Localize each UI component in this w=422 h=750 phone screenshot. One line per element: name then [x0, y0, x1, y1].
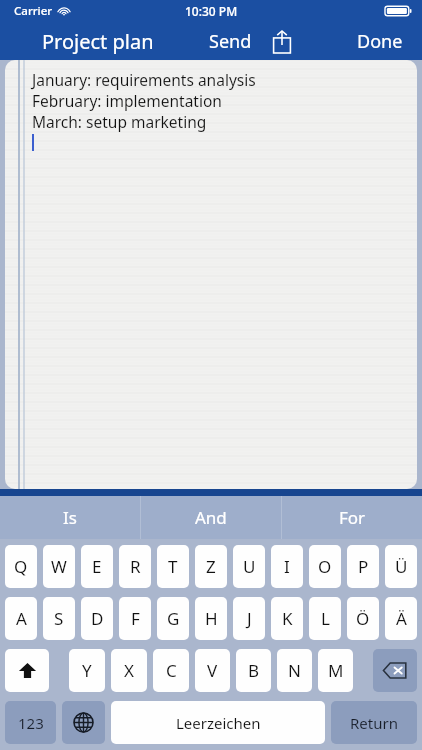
button[interactable]: I [271, 545, 303, 588]
staticText: E [92, 555, 102, 578]
button[interactable]: C [153, 649, 189, 692]
button[interactable]: N [277, 649, 312, 692]
staticText: R [130, 555, 141, 578]
staticText: Is [63, 506, 77, 529]
button[interactable]: B [236, 649, 271, 692]
button[interactable]: Leerzeichen [111, 701, 325, 744]
staticText: T [168, 555, 178, 578]
button[interactable]: Z [195, 545, 227, 588]
staticText: G [167, 607, 180, 630]
button[interactable]: W [43, 545, 75, 588]
staticText: February: implementation [32, 90, 222, 111]
staticText: I [284, 555, 290, 578]
button[interactable]: Q [5, 545, 37, 588]
button[interactable]: M [318, 649, 353, 692]
button[interactable]: P [347, 545, 379, 588]
staticText: M [328, 659, 344, 682]
staticText: January: requirements analysis [32, 69, 256, 90]
button[interactable]: Project plan [0, 24, 166, 59]
staticText: 123 [18, 713, 44, 733]
staticText: Done [357, 29, 403, 54]
staticText: Ö [356, 607, 370, 630]
staticText: P [358, 555, 369, 578]
staticText: O [318, 555, 332, 578]
button[interactable]: S [43, 597, 75, 640]
button[interactable]: K [271, 597, 303, 640]
staticText: Leerzeichen [176, 713, 261, 733]
staticText: N [288, 659, 301, 682]
button[interactable]: R [119, 545, 151, 588]
button[interactable]: Ö [347, 597, 379, 640]
staticText: C [166, 659, 177, 682]
button[interactable]: Return [331, 701, 417, 744]
button[interactable]: Y [69, 649, 105, 692]
staticText: W [51, 555, 67, 578]
button[interactable]: X [111, 649, 147, 692]
staticText: U [243, 555, 256, 578]
staticText: Return [350, 713, 398, 733]
button[interactable]: Change keyboard [62, 701, 105, 744]
staticText: Send [209, 29, 252, 54]
button[interactable]: Ä [385, 597, 417, 640]
staticText: Ü [395, 555, 408, 578]
staticText: F [131, 607, 140, 630]
button[interactable]: January: requirements analysis [5, 60, 417, 489]
staticText: A [16, 607, 27, 630]
staticText: B [248, 659, 260, 682]
button[interactable]: Shift [5, 649, 49, 692]
button[interactable]: E [81, 545, 113, 588]
button[interactable]: G [157, 597, 189, 640]
button[interactable]: U [233, 545, 265, 588]
button[interactable]: For [282, 496, 422, 539]
button[interactable]: Is [0, 496, 140, 539]
staticText: Ä [396, 607, 407, 630]
button[interactable]: O [309, 545, 341, 588]
button[interactable]: Send [203, 25, 258, 58]
staticText: 10:30 PM [185, 3, 238, 19]
button[interactable]: T [157, 545, 189, 588]
staticText: Project plan [42, 28, 154, 55]
button[interactable]: Ü [385, 545, 417, 588]
staticText: D [91, 607, 104, 630]
staticText: Carrier [14, 3, 53, 19]
button[interactable]: L [309, 597, 341, 640]
staticText: Y [82, 659, 92, 682]
button[interactable]: And [141, 496, 281, 539]
staticText: H [205, 607, 218, 630]
button[interactable]: A [5, 597, 37, 640]
staticText: S [54, 607, 64, 630]
button[interactable]: H [195, 597, 227, 640]
staticText: X [124, 659, 134, 682]
staticText: Z [206, 555, 216, 578]
staticText: Q [14, 555, 28, 578]
button[interactable]: F [119, 597, 151, 640]
button[interactable]: Done [345, 25, 422, 58]
staticText: V [207, 659, 218, 682]
button[interactable]: V [195, 649, 230, 692]
staticText: J [247, 607, 252, 630]
button[interactable]: Share [268, 26, 296, 58]
staticText: For [339, 506, 366, 529]
staticText: K [282, 607, 293, 630]
staticText: L [321, 607, 330, 630]
button[interactable]: 123 [5, 701, 56, 744]
button[interactable]: J [233, 597, 265, 640]
button[interactable]: D [81, 597, 113, 640]
staticText: March: setup marketing [32, 111, 207, 132]
button[interactable]: Backspace [373, 649, 417, 692]
staticText: And [195, 506, 227, 529]
